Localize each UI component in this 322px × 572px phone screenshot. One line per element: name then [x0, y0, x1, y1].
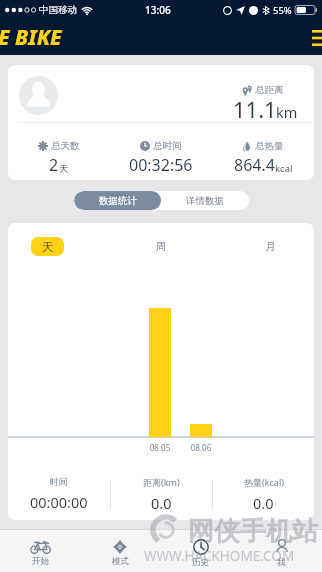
staticText: 热量(kcal) — [244, 476, 284, 488]
button[interactable]: 我 — [241, 530, 322, 572]
staticText: 2 — [49, 154, 59, 176]
staticText: 开始 — [32, 556, 49, 567]
staticText: 模式 — [112, 556, 129, 567]
button[interactable]: 周 — [146, 237, 176, 256]
staticText: 时间 — [50, 476, 68, 487]
staticText: 距离(km) — [143, 476, 180, 488]
button[interactable]: 开始 — [0, 530, 80, 572]
staticText: 天 — [59, 163, 69, 175]
staticText: km — [276, 102, 298, 122]
button[interactable]: 历史 — [160, 530, 241, 572]
staticText: 总天数 — [51, 140, 80, 152]
staticText: 天 — [42, 240, 54, 254]
staticText: 0.0 — [253, 493, 274, 513]
button[interactable]: 天 — [31, 237, 64, 256]
staticText: 00:00:00 — [30, 492, 88, 512]
staticText: 总热量 — [255, 140, 284, 152]
staticText: 网侠手机站 — [188, 515, 318, 548]
button[interactable]: 数据统计 — [74, 191, 161, 210]
button[interactable]: 模式 — [80, 530, 160, 572]
staticText: 08.05 — [142, 442, 178, 453]
staticText: WWW.HACKHOME.COM — [144, 547, 295, 565]
staticText: E BIKE — [0, 23, 62, 52]
staticText: 0.0 — [151, 493, 172, 513]
button[interactable]: 详情数据 — [161, 191, 249, 210]
staticText: 13:06 — [145, 3, 171, 17]
staticText: 详情数据 — [186, 195, 224, 207]
staticText: 中国移动 — [39, 4, 77, 16]
staticText: 周 — [156, 240, 167, 253]
staticText: 00:32:56 — [129, 154, 193, 176]
staticText: 历史 — [192, 557, 209, 568]
staticText: 月 — [265, 240, 276, 253]
button[interactable]: Menu — [309, 27, 322, 49]
button[interactable]: 月 — [255, 237, 285, 256]
staticText: 11.1 — [233, 94, 277, 124]
staticText: 总距离 — [255, 84, 284, 96]
staticText: 864.4 — [234, 154, 275, 176]
staticText: 数据统计 — [99, 195, 137, 207]
staticText: 我 — [277, 557, 286, 568]
staticText: kcal — [275, 162, 293, 175]
staticText: 总时间 — [153, 140, 182, 152]
staticText: 08.06 — [183, 442, 219, 453]
staticText: 55% — [273, 4, 292, 17]
